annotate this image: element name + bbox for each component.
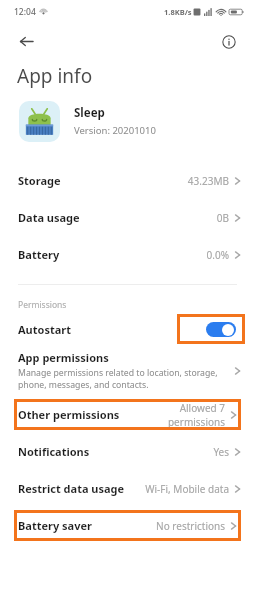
staticText: Storage [18, 173, 61, 188]
staticText: App permissions [18, 350, 109, 365]
button[interactable]: Notifications [0, 433, 255, 470]
staticText: Sleep [74, 105, 105, 121]
button[interactable]: Autostart toggle, on [177, 314, 245, 344]
staticText: Allowed 7 permissions [128, 401, 225, 429]
staticText: Other permissions [18, 407, 120, 422]
button[interactable]: Battery [0, 236, 255, 273]
staticText: 0B [216, 211, 229, 225]
staticText: Wi-Fi, Mobile data [145, 482, 229, 496]
staticText: Manage permissions related to location, … [18, 367, 218, 391]
staticText: Permissions [18, 299, 67, 311]
staticText: Autostart [18, 322, 71, 337]
staticText: 1.8KB/s [164, 7, 192, 17]
button[interactable]: App details info [213, 26, 244, 57]
button[interactable]: Battery saver [14, 510, 241, 541]
staticText: 12:04 [14, 6, 36, 18]
button[interactable]: Data usage [0, 199, 255, 236]
staticText: Restrict data usage [18, 481, 125, 496]
staticText: App info [17, 63, 93, 89]
staticText: Battery [18, 247, 60, 262]
staticText: Notifications [18, 444, 90, 459]
button[interactable]: Other permissions [14, 399, 241, 430]
staticText: No restrictions [156, 519, 225, 533]
button[interactable]: App permissions [0, 347, 255, 396]
button[interactable]: Back [11, 26, 42, 57]
staticText: Battery saver [18, 518, 92, 533]
button[interactable]: Storage [0, 162, 255, 199]
staticText: 43.23MB [187, 174, 229, 188]
staticText: Data usage [18, 210, 80, 225]
button[interactable]: Restrict data usage [0, 470, 255, 507]
staticText: Yes [213, 445, 229, 459]
staticText: Version: 20201010 [74, 124, 156, 137]
staticText: 0.0% [206, 248, 229, 262]
